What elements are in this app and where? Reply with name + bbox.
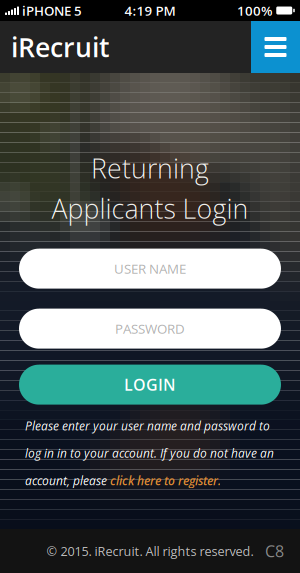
button[interactable]: LOGIN xyxy=(19,365,281,405)
staticText: Applicants Login xyxy=(51,190,248,227)
button[interactable]: Menu xyxy=(251,21,300,73)
staticText: 100% xyxy=(237,1,273,20)
staticText: click here to register. xyxy=(110,472,221,489)
staticText: PASSWORD xyxy=(115,320,185,338)
staticText: LOGIN xyxy=(124,374,176,395)
staticText: iPHONE 5 xyxy=(19,1,82,20)
staticText: © 2015. iRecruit. All rights reserved. xyxy=(46,542,253,560)
staticText: C8 xyxy=(265,540,284,562)
staticText: Returning xyxy=(91,150,209,186)
button[interactable]: click here to register. xyxy=(110,472,221,489)
button[interactable]: USER NAME xyxy=(19,249,281,289)
staticText: 4:19 PM xyxy=(124,1,175,20)
staticText: Please enter your user name and password… xyxy=(25,418,270,434)
staticText: log in in to your account. If you do not… xyxy=(25,445,274,461)
staticText: USER NAME xyxy=(114,260,186,278)
staticText: account, please xyxy=(25,472,110,489)
staticText: iRecruit xyxy=(11,29,110,65)
button[interactable]: PASSWORD xyxy=(19,309,281,349)
